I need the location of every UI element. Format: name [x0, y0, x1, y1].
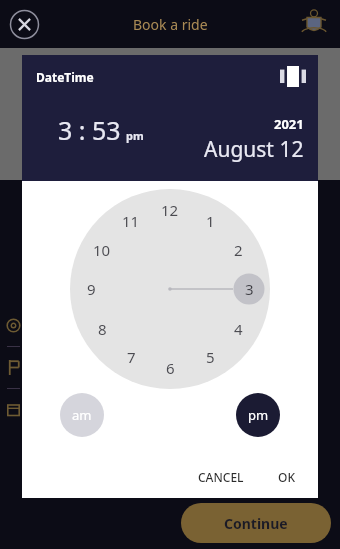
button[interactable]: 3 : 53: [58, 113, 121, 147]
button[interactable]: 12: [159, 200, 181, 220]
staticText: CANCEL: [198, 469, 244, 485]
button[interactable]: 4: [227, 319, 249, 339]
button[interactable]: CANCEL: [189, 462, 253, 492]
staticText: am: [72, 406, 92, 424]
button[interactable]: am: [60, 393, 104, 437]
button[interactable]: August 12: [204, 135, 304, 164]
button[interactable]: 7: [120, 347, 142, 367]
button[interactable]: 2021: [274, 115, 304, 133]
button[interactable]: 9: [80, 279, 102, 299]
staticText: DateTime: [36, 69, 94, 85]
button[interactable]: 3: [238, 279, 260, 299]
button[interactable]: 5: [199, 347, 221, 367]
staticText: 12: [161, 200, 179, 220]
staticText: 6: [166, 358, 175, 378]
staticText: 1: [206, 211, 215, 231]
staticText: OK: [278, 469, 295, 485]
staticText: 5: [206, 347, 215, 367]
staticText: 3: [245, 279, 254, 299]
button[interactable]: Continue: [181, 503, 331, 543]
staticText: Book a ride: [133, 15, 208, 34]
button[interactable]: Close: [9, 9, 40, 40]
staticText: Continue: [224, 514, 288, 533]
staticText: 10: [93, 240, 111, 260]
button[interactable]: pm: [236, 393, 280, 437]
button[interactable]: 6: [159, 358, 181, 378]
staticText: 8: [98, 319, 107, 339]
button[interactable]: 1: [199, 211, 221, 231]
button[interactable]: pm: [126, 128, 144, 143]
staticText: 4: [234, 319, 243, 339]
button[interactable]: 11: [120, 211, 142, 231]
staticText: 9: [87, 279, 96, 299]
button[interactable]: OK: [269, 462, 304, 492]
button[interactable]: 10: [91, 240, 113, 260]
staticText: 2: [234, 240, 243, 260]
button[interactable]: Switch input mode: [280, 66, 306, 87]
staticText: 7: [127, 347, 136, 367]
staticText: pm: [248, 406, 269, 424]
staticText: 11: [122, 211, 140, 231]
button[interactable]: 2: [227, 240, 249, 260]
button[interactable]: 8: [91, 319, 113, 339]
